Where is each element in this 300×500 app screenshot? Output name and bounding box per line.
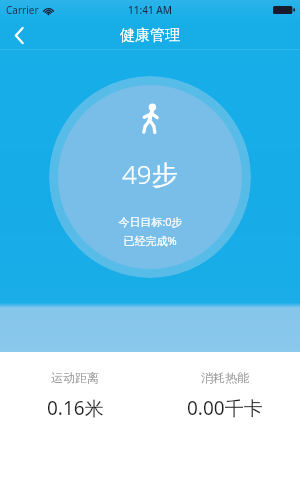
staticText: 今日目标:0步: [118, 214, 183, 229]
staticText: Carrier: [6, 3, 39, 17]
staticText: 已经完成%: [123, 233, 177, 248]
other: Steps: [138, 104, 162, 134]
button[interactable]: 运动距离: [0, 364, 150, 427]
staticText: 11:41 AM: [128, 3, 172, 17]
staticText: 运动距离: [51, 370, 99, 385]
staticText: 健康管理: [120, 26, 180, 45]
button[interactable]: 消耗热能: [150, 364, 300, 427]
staticText: 消耗热能: [201, 370, 249, 385]
button[interactable]: Back: [0, 20, 38, 50]
staticText: 0.00千卡: [187, 395, 263, 421]
button[interactable]: Steps: [49, 76, 251, 278]
staticText: 49步: [122, 156, 178, 192]
staticText: 0.16米: [47, 395, 104, 421]
